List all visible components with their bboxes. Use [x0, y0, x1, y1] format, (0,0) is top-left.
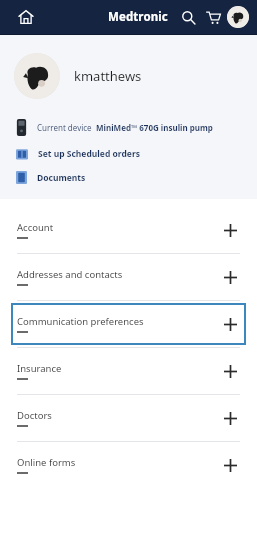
- button[interactable]: Cart: [202, 6, 224, 28]
- staticText: Set up Scheduled orders: [38, 148, 140, 160]
- staticText: Documents: [37, 172, 86, 184]
- button[interactable]: Home: [14, 5, 38, 29]
- button[interactable]: Addresses and contacts: [17, 256, 240, 298]
- button[interactable]: Online forms: [17, 444, 240, 486]
- button[interactable]: Insurance: [17, 350, 240, 392]
- staticText: Account: [17, 221, 54, 234]
- button[interactable]: Profile: [227, 6, 249, 28]
- button[interactable]: Account: [17, 209, 240, 251]
- button[interactable]: Communication preferences: [11, 303, 246, 345]
- staticText: Current device: [37, 122, 94, 133]
- staticText: Online forms: [17, 456, 76, 469]
- staticText: Doctors: [17, 409, 52, 422]
- button[interactable]: kmatthews: [0, 53, 257, 99]
- staticText: Addresses and contacts: [17, 268, 123, 281]
- staticText: kmatthews: [74, 67, 142, 85]
- button[interactable]: Documents: [0, 170, 257, 185]
- button[interactable]: Current device: [0, 117, 257, 138]
- button[interactable]: Set up Scheduled orders: [0, 147, 257, 161]
- staticText: Medtronic: [108, 9, 168, 25]
- button[interactable]: Doctors: [17, 397, 240, 439]
- staticText: MiniMed™ 670G insulin pump: [94, 122, 213, 133]
- staticText: Insurance: [17, 362, 62, 375]
- button[interactable]: Search: [177, 6, 199, 28]
- staticText: Communication preferences: [17, 315, 144, 328]
